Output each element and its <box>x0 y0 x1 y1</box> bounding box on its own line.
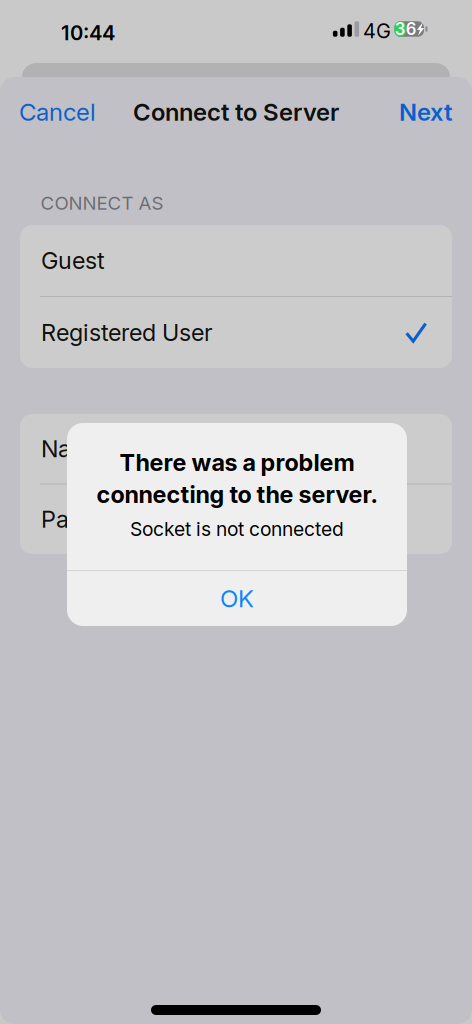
staticText: CONNECT AS <box>40 192 163 214</box>
button[interactable]: Registered User <box>20 297 452 368</box>
staticText: Next <box>399 97 452 126</box>
staticText: There was a problem <box>119 448 354 477</box>
staticText: 36 <box>395 19 417 39</box>
staticText: Name <box>41 435 104 463</box>
button[interactable]: Name <box>20 414 452 483</box>
staticText: Password <box>41 505 147 533</box>
staticText: Guest <box>41 246 105 275</box>
staticText: OK <box>220 584 254 613</box>
staticText: 10:44 <box>61 21 115 45</box>
button[interactable]: Password <box>20 484 452 554</box>
button[interactable]: Guest <box>20 225 452 296</box>
staticText: Connect to Server <box>133 97 339 126</box>
button[interactable]: OK <box>67 571 407 626</box>
button[interactable]: Next <box>352 98 452 126</box>
staticText: Registered User <box>41 318 213 347</box>
staticText: 4G <box>363 19 391 43</box>
staticText: Cancel <box>19 97 96 126</box>
staticText: connecting to the server. <box>96 480 377 509</box>
button[interactable]: Cancel <box>19 98 119 126</box>
staticText: Socket is not connected <box>130 517 344 541</box>
